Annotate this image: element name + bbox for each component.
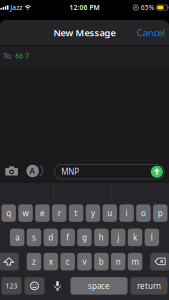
staticText: w <box>23 208 29 218</box>
button[interactable]: c <box>60 253 75 270</box>
staticText: t <box>75 208 78 218</box>
staticText: 66 7 <box>15 51 29 60</box>
staticText: Jazz <box>10 3 22 12</box>
staticText: d <box>48 232 53 243</box>
staticText: i <box>126 208 128 218</box>
button[interactable]: u <box>102 204 117 222</box>
staticText: g <box>82 232 87 243</box>
button[interactable]: r <box>52 204 66 222</box>
button[interactable]: k <box>128 229 142 246</box>
staticText: y <box>91 208 95 218</box>
staticText: j <box>117 232 119 243</box>
staticText: 12:06 PM <box>69 3 99 12</box>
button[interactable]: z <box>27 253 41 270</box>
button[interactable]: i <box>119 204 134 222</box>
button[interactable]: 123 <box>1 277 21 295</box>
button[interactable]: To: <box>0 46 169 65</box>
button[interactable]: y <box>86 204 100 222</box>
button[interactable]: h <box>94 229 108 246</box>
staticText: e <box>40 208 45 218</box>
button[interactable]: a <box>10 229 24 246</box>
button[interactable]: j <box>111 229 125 246</box>
staticText: MNP <box>61 166 79 177</box>
staticText: r <box>58 208 61 218</box>
button[interactable]: f <box>60 229 75 246</box>
button[interactable]: t <box>69 204 83 222</box>
staticText: k <box>133 232 137 243</box>
button[interactable] <box>150 253 169 270</box>
staticText: x <box>49 256 53 267</box>
button[interactable]: l <box>145 229 159 246</box>
staticText: s <box>32 232 36 243</box>
staticText: space <box>88 281 110 291</box>
staticText: A <box>30 166 36 176</box>
button[interactable]: s <box>27 229 41 246</box>
staticText: f <box>66 232 69 243</box>
staticText: z <box>32 256 36 267</box>
staticText: o <box>141 208 146 218</box>
button[interactable]: return <box>130 277 167 295</box>
button[interactable]: space <box>70 277 127 295</box>
staticText: b <box>99 256 104 267</box>
button[interactable] <box>151 166 164 178</box>
button[interactable]: q <box>1 204 16 222</box>
staticText: q <box>6 208 11 218</box>
button[interactable]: g <box>77 229 92 246</box>
staticText: n <box>116 256 121 267</box>
button[interactable]: w <box>18 204 33 222</box>
staticText: Cancel <box>137 27 165 39</box>
button[interactable]: Cancel <box>137 27 169 39</box>
button[interactable] <box>47 277 67 295</box>
button[interactable] <box>0 166 18 183</box>
staticText: 123 <box>5 281 17 290</box>
button[interactable]: e <box>35 204 50 222</box>
button[interactable]: o <box>136 204 151 222</box>
staticText: a <box>15 232 19 243</box>
button[interactable] <box>24 277 44 295</box>
button[interactable]: n <box>111 253 125 270</box>
staticText: New Message <box>53 27 115 39</box>
staticText: c <box>66 256 70 267</box>
staticText: h <box>99 232 104 243</box>
button[interactable]: p <box>153 204 167 222</box>
staticText: 65% <box>141 3 155 12</box>
staticText: u <box>107 208 112 218</box>
button[interactable]: d <box>44 229 58 246</box>
staticText: To: <box>3 51 12 60</box>
button[interactable] <box>0 253 19 270</box>
button[interactable]: x <box>44 253 58 270</box>
button[interactable]: v <box>77 253 92 270</box>
staticText: return <box>137 281 161 291</box>
button[interactable]: m <box>128 253 142 270</box>
staticText: v <box>82 256 86 267</box>
button[interactable]: A <box>18 165 39 183</box>
staticText: p <box>158 208 163 218</box>
staticText: l <box>151 232 153 243</box>
button[interactable]: b <box>94 253 108 270</box>
staticText: m <box>131 256 138 267</box>
